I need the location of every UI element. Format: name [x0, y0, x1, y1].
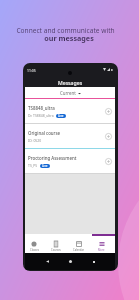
staticText: Live [58, 114, 64, 118]
staticText: Live [42, 164, 48, 168]
button[interactable]: Current [25, 87, 115, 99]
other: More [99, 241, 105, 247]
staticText: 11:05 [27, 68, 36, 73]
staticText: More [98, 248, 105, 252]
button[interactable]: Proctoring Assessment [25, 149, 115, 174]
staticText: Calendar [73, 248, 84, 252]
staticText: Current [60, 90, 76, 96]
other: Add Original course [105, 133, 112, 140]
other: Classes [31, 241, 37, 247]
other: Home [69, 260, 72, 263]
staticText: Messages [58, 79, 83, 86]
other: Calendar [76, 241, 82, 247]
button[interactable]: TS8848_ultra [25, 99, 115, 124]
staticText: ID: 0520 [28, 138, 42, 143]
staticText: Connect and communicate with [16, 26, 115, 35]
other: Add Proctoring Assessment [105, 158, 112, 165]
staticText: TS8848_ultra [28, 105, 55, 111]
button[interactable]: More [92, 234, 115, 253]
staticText: Dr. TS8848_ultra [28, 113, 54, 118]
other: Back [46, 260, 49, 263]
other: Add TS8848_ultra [105, 108, 112, 115]
staticText: Proctoring Assessment [28, 155, 77, 161]
staticText: our messages [44, 33, 94, 43]
staticText: TS_P5 [28, 163, 38, 168]
staticText: Classes [30, 248, 39, 252]
button[interactable]: Classes [25, 234, 47, 253]
other: Courses [53, 241, 59, 247]
staticText: Courses [51, 248, 61, 252]
staticText: Original course [28, 130, 61, 136]
button[interactable]: Calendar [69, 234, 92, 253]
button[interactable]: Courses [47, 234, 69, 253]
button[interactable]: Original course [25, 124, 115, 149]
